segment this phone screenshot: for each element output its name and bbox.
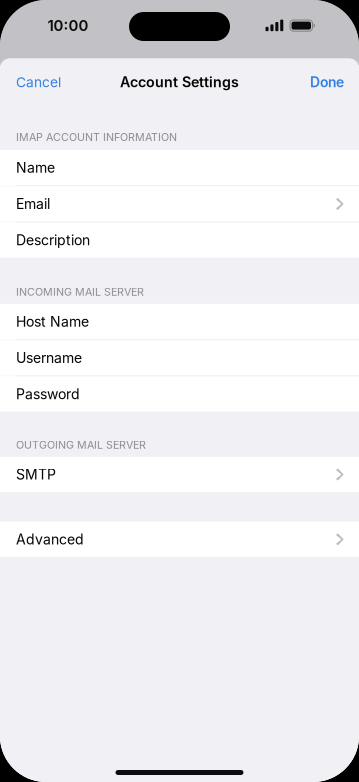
staticText: IMAP ACCOUNT INFORMATION: [16, 130, 177, 143]
staticText: INCOMING MAIL SERVER: [16, 285, 144, 298]
button[interactable]: Username: [0, 340, 359, 375]
staticText: Description: [16, 232, 90, 249]
staticText: OUTGOING MAIL SERVER: [16, 438, 146, 451]
staticText: Cancel: [16, 74, 61, 90]
staticText: Done: [310, 74, 344, 91]
staticText: Advanced: [16, 531, 84, 548]
button[interactable]: Name: [0, 150, 359, 185]
staticText: Email: [16, 195, 50, 212]
staticText: Account Settings: [120, 74, 239, 91]
staticText: Host Name: [16, 313, 89, 330]
button[interactable]: SMTP: [0, 457, 359, 492]
button[interactable]: Host Name: [0, 304, 359, 339]
button[interactable]: Cancel: [0, 60, 73, 105]
staticText: Password: [16, 386, 80, 402]
staticText: Username: [16, 349, 82, 366]
staticText: Name: [16, 159, 55, 176]
button[interactable]: Password: [0, 376, 359, 412]
button[interactable]: Advanced: [0, 522, 359, 557]
button[interactable]: Email: [0, 186, 359, 222]
button[interactable]: Description: [0, 222, 359, 258]
staticText: 10:00: [47, 16, 88, 35]
staticText: SMTP: [16, 466, 56, 483]
button[interactable]: Done: [298, 60, 359, 105]
